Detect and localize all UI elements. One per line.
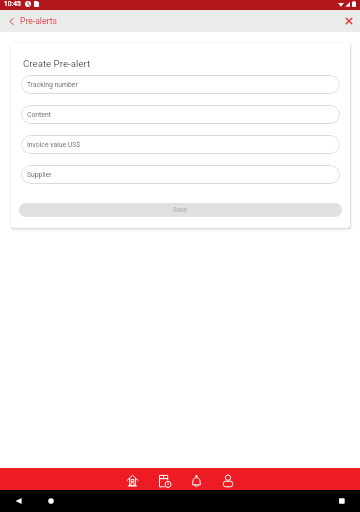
- button[interactable]: Packages: [148, 468, 180, 490]
- staticText: Tracking number: [27, 81, 78, 89]
- staticText: Save: [173, 206, 188, 214]
- staticText: Create Pre-alert: [23, 58, 91, 69]
- staticText: Supplier: [27, 171, 52, 179]
- staticText: Pre-alerts: [20, 16, 57, 26]
- other: Recents: [339, 498, 345, 504]
- button[interactable]: Close: [338, 10, 360, 32]
- staticText: Invoice value US$: [27, 141, 81, 149]
- button[interactable]: Back: [0, 16, 61, 26]
- button[interactable]: Notifications: [180, 468, 212, 490]
- button[interactable]: Save: [19, 203, 342, 217]
- button[interactable]: Home: [116, 468, 148, 490]
- button[interactable]: Tracking number: [21, 75, 340, 94]
- other: Home: [48, 498, 54, 504]
- other: Back: [9, 18, 14, 25]
- staticText: 10:45: [4, 0, 21, 8]
- button[interactable]: Content: [21, 105, 340, 124]
- button[interactable]: Supplier: [21, 165, 340, 184]
- button[interactable]: Profile: [212, 468, 244, 490]
- button[interactable]: Invoice value US$: [21, 135, 340, 154]
- other: Back: [15, 497, 22, 505]
- staticText: Content: [27, 111, 51, 119]
